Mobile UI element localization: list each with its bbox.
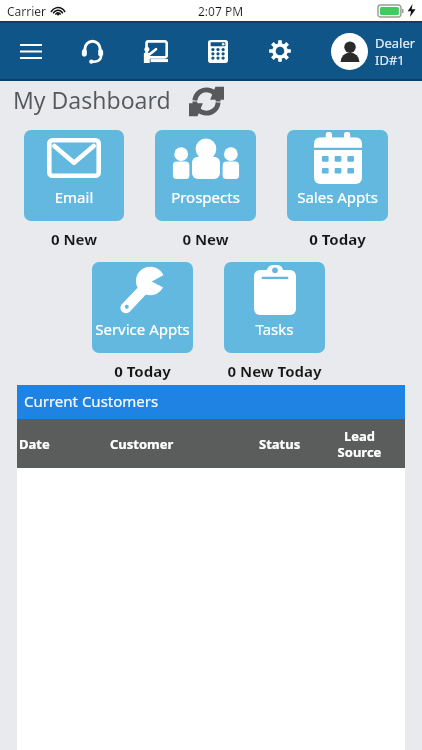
- staticText: Date: [19, 435, 110, 453]
- button[interactable]: Prospects: [155, 130, 256, 221]
- button[interactable]: Service Appts: [92, 262, 193, 353]
- staticText: 2:07 PM: [198, 3, 244, 19]
- button[interactable]: Dealer ID#1: [331, 21, 422, 81]
- staticText: 0 New: [24, 229, 124, 249]
- button[interactable]: Menu: [0, 21, 61, 81]
- staticText: Lead Source: [318, 427, 401, 460]
- button[interactable]: Settings: [248, 21, 311, 81]
- button[interactable]: Calculator: [187, 21, 248, 81]
- staticText: 0 New: [155, 229, 256, 249]
- staticText: 0 New Today: [224, 361, 325, 381]
- button[interactable]: Sales Appts: [287, 130, 388, 221]
- button[interactable]: Refresh: [188, 83, 224, 119]
- staticText: Customer: [110, 435, 254, 453]
- button[interactable]: Current Customers: [17, 385, 405, 419]
- staticText: My Dashboard: [13, 84, 171, 115]
- button[interactable]: Tasks: [224, 262, 325, 353]
- staticText: 0 Today: [92, 361, 193, 381]
- staticText: Current Customers: [24, 391, 159, 411]
- staticText: Dealer ID#1: [375, 34, 416, 69]
- staticText: Service Appts: [92, 319, 193, 339]
- staticText: Prospects: [155, 187, 256, 207]
- staticText: Tasks: [224, 319, 325, 339]
- staticText: Sales Appts: [287, 187, 388, 207]
- staticText: Status: [259, 435, 327, 453]
- staticText: Email: [24, 187, 124, 207]
- button[interactable]: Email: [24, 130, 124, 221]
- button[interactable]: Training: [123, 21, 187, 81]
- button[interactable]: Support: [61, 21, 123, 81]
- staticText: 0 Today: [287, 229, 388, 249]
- staticText: Carrier: [7, 3, 47, 19]
